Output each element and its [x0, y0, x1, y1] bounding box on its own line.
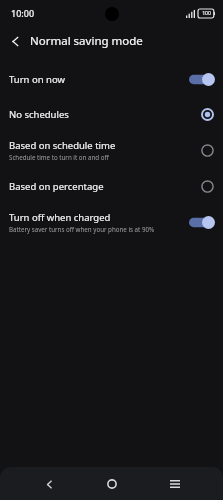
button[interactable]: Not selected — [199, 142, 215, 158]
button[interactable]: Home — [97, 469, 127, 499]
button[interactable]: Selected — [199, 106, 215, 122]
button[interactable]: Toggle — [189, 73, 215, 86]
button[interactable]: Back — [0, 26, 30, 56]
button[interactable]: Back — [34, 469, 64, 499]
staticText: 100 — [202, 10, 211, 17]
button[interactable]: Turn off when charged — [0, 204, 223, 240]
staticText: Turn on now — [9, 73, 65, 86]
button[interactable]: Recents — [160, 469, 190, 499]
button[interactable]: Turn on now — [0, 62, 223, 96]
staticText: Normal saving mode — [30, 33, 143, 49]
staticText: Based on schedule time — [9, 139, 116, 152]
staticText: Based on percentage — [9, 180, 104, 193]
staticText: Battery saver turns off when your phone … — [9, 225, 155, 233]
button[interactable]: Based on percentage — [0, 168, 223, 204]
button[interactable]: Toggle — [189, 216, 215, 229]
button[interactable]: Not selected — [199, 178, 215, 194]
button[interactable]: Based on schedule time — [0, 132, 223, 168]
staticText: Schedule time to turn it on and off — [9, 153, 109, 161]
staticText: Turn off when charged — [9, 211, 111, 224]
staticText: 10:00 — [11, 7, 35, 19]
button[interactable]: No schedules — [0, 96, 223, 132]
staticText: No schedules — [9, 108, 69, 121]
